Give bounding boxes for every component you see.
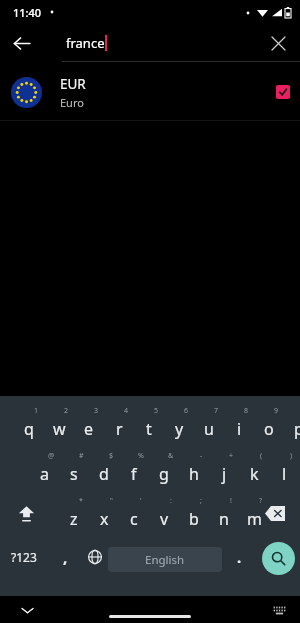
staticText: English [145,552,185,568]
staticText: w [53,418,66,440]
staticText: e [84,418,94,440]
staticText: & [168,451,174,461]
staticText: 11:40 [13,5,42,20]
staticText: 5 [154,406,159,416]
button[interactable]: Search [262,542,295,575]
staticText: EUR [60,75,86,93]
staticText: $ [109,451,114,461]
staticText: france [66,34,105,52]
staticText: q [24,418,34,440]
button[interactable]: 8 [224,404,254,448]
button[interactable]: + [209,449,239,493]
button[interactable]: ' [119,494,149,538]
button[interactable]: ( [239,449,269,493]
button[interactable]: - [179,449,209,493]
staticText: 3 [94,406,99,416]
button[interactable]: 1 [14,404,44,448]
staticText: i [237,418,242,440]
button[interactable]: ; [179,494,209,538]
button[interactable]: Period [224,541,254,573]
staticText: * [79,496,83,506]
staticText: 9 [274,406,279,416]
button[interactable]: 9 [254,404,284,448]
button[interactable]: 0 [284,404,300,448]
staticText: # [79,451,84,461]
staticText: t [146,418,152,440]
staticText: z [70,508,78,530]
staticText: x [100,508,109,530]
staticText: " [110,496,113,506]
button[interactable]: & [149,449,179,493]
button[interactable]: Back [6,28,36,58]
staticText: l [282,463,287,485]
button[interactable]: Backspace [256,494,294,532]
staticText: 7 [214,406,219,416]
button[interactable]: 6 [164,404,194,448]
staticText: . [237,547,242,567]
button[interactable]: Switch keyboard [268,599,290,621]
button[interactable]: 5 [134,404,164,448]
staticText: 6 [184,406,189,416]
button[interactable]: 7 [194,404,224,448]
staticText: y [175,418,184,440]
staticText: n [219,508,229,530]
staticText: : [170,496,172,506]
staticText: v [160,508,169,530]
staticText: ! [230,496,232,506]
staticText: ?123 [11,549,37,565]
button[interactable]: Comma [48,541,82,573]
staticText: o [264,418,274,440]
button[interactable]: ?123 [4,541,44,573]
staticText: ; [200,496,202,506]
button[interactable]: English [108,547,222,572]
staticText: a [40,463,49,485]
staticText: d [99,463,109,485]
button[interactable]: # [59,449,89,493]
staticText: ' [140,496,142,506]
button[interactable]: $ [89,449,119,493]
staticText: r [116,418,123,440]
button[interactable]: % [119,449,149,493]
button[interactable]: 2 [44,404,74,448]
staticText: f [131,463,137,485]
staticText: p [294,418,300,440]
button[interactable]: Clear [264,29,292,57]
button[interactable]: ? [239,494,269,538]
staticText: j [222,463,227,485]
button[interactable]: Hide keyboard [16,599,38,621]
button[interactable]: ! [209,494,239,538]
staticText: 2 [64,406,69,416]
staticText: ) [290,451,293,461]
staticText: % [138,451,144,461]
staticText: s [70,463,78,485]
button[interactable]: 4 [104,404,134,448]
staticText: - [200,451,203,461]
staticText: b [189,508,199,530]
staticText: u [204,418,214,440]
staticText: 4 [124,406,129,416]
staticText: ? [259,496,263,506]
staticText: c [130,508,138,530]
button[interactable]: Shift [8,494,44,532]
button[interactable]: : [149,494,179,538]
staticText: 8 [244,406,249,416]
staticText: Euro [60,95,84,110]
staticText: m [247,508,262,530]
button[interactable]: 3 [74,404,104,448]
button[interactable]: * [59,494,89,538]
staticText: 1 [34,406,39,416]
button[interactable]: @ [29,449,59,493]
button[interactable]: EUR [0,64,300,120]
staticText: @ [48,451,55,461]
button[interactable]: ) [269,449,299,493]
staticText: , [63,547,68,567]
button[interactable]: " [89,494,119,538]
staticText: + [229,451,234,461]
staticText: h [189,463,199,485]
button[interactable]: Change language [80,541,110,573]
staticText: ( [260,451,263,461]
staticText: k [250,463,259,485]
staticText: g [159,463,169,485]
